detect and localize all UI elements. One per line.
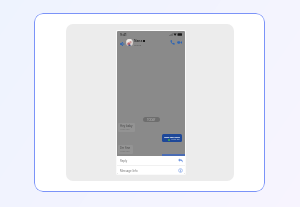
button[interactable]: Video call <box>175 38 183 46</box>
staticText: 9:41 <box>120 32 127 37</box>
button[interactable]: Reply <box>117 156 185 165</box>
staticText: Nana <box>134 39 143 43</box>
button[interactable]: Back <box>118 40 126 48</box>
staticText: How are you? <box>164 135 180 138</box>
staticText: online <box>134 43 141 46</box>
button[interactable]: Voice call <box>168 38 176 46</box>
staticText: Reply <box>120 159 128 163</box>
staticText: 10:32 am <box>120 128 130 131</box>
staticText: TODAY <box>147 118 156 122</box>
staticText: Message Info <box>120 169 138 173</box>
button[interactable]: Message Info <box>117 166 185 174</box>
staticText: I'm fine <box>120 146 131 150</box>
staticText: 10:36 am <box>120 150 130 153</box>
staticText: 10:33 am <box>171 138 180 141</box>
staticText: Hey baby <box>120 124 133 128</box>
